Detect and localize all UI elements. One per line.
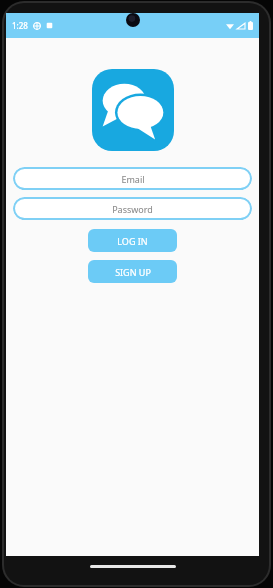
button[interactable]: SIGN UP [88, 260, 177, 283]
staticText: Email [121, 173, 145, 185]
staticText: SIGN UP [115, 266, 151, 278]
button[interactable]: LOG IN [88, 229, 177, 252]
button[interactable]: Email [13, 167, 252, 190]
staticText: 1:28 [12, 20, 28, 31]
button[interactable]: Password [13, 197, 252, 220]
staticText: Password [112, 203, 153, 215]
staticText: LOG IN [117, 235, 148, 247]
other: App logo [92, 69, 174, 151]
